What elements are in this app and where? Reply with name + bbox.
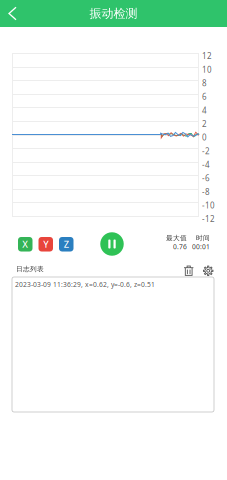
staticText: -2 (202, 146, 210, 156)
staticText: 10 (202, 64, 212, 75)
button[interactable]: Pause (97, 229, 127, 259)
button[interactable]: Y (38, 237, 53, 251)
staticText: 时间 (196, 234, 210, 242)
button[interactable]: Clear log (180, 261, 197, 280)
staticText: 8 (202, 78, 207, 88)
staticText: X (22, 238, 28, 250)
staticText: 0 (202, 132, 207, 143)
staticText: 2023-03-09 11:36:29, x=0.62, y=-0.6, z=0… (15, 280, 155, 289)
button[interactable]: Back (0, 0, 28, 27)
staticText: -6 (202, 173, 210, 183)
staticText: 00:01 (192, 242, 210, 251)
staticText: 12 (202, 51, 212, 61)
staticText: 2 (202, 119, 207, 129)
staticText: 振动检测 (89, 6, 137, 21)
button[interactable]: Z (59, 237, 73, 251)
staticText: -12 (202, 214, 215, 224)
staticText: -4 (202, 159, 210, 170)
staticText: 日志列表 (16, 265, 44, 273)
button[interactable]: X (18, 237, 32, 251)
staticText: 4 (202, 105, 207, 116)
staticText: Z (64, 238, 69, 250)
staticText: 0.76 (173, 242, 187, 251)
button[interactable]: Settings (199, 262, 217, 280)
staticText: -10 (202, 200, 215, 211)
staticText: 6 (202, 91, 207, 102)
staticText: 最大值 (166, 234, 187, 242)
staticText: Y (43, 238, 48, 250)
staticText: -8 (202, 186, 210, 197)
